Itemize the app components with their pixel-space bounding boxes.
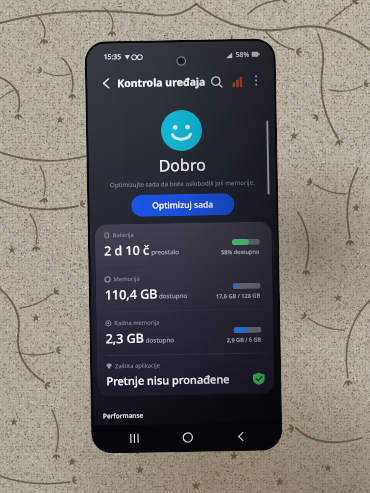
staticText: Radna memorija	[114, 318, 160, 327]
staticText: 58% dostupno	[221, 248, 260, 256]
staticText: Performanse	[103, 411, 144, 420]
button[interactable]: Radna memorija	[96, 309, 274, 355]
button[interactable]: More options	[248, 73, 264, 89]
button[interactable]: Memorija	[95, 265, 273, 312]
button[interactable]: Usage statistics	[228, 72, 246, 90]
staticText: Optimizuj sada	[152, 198, 213, 212]
staticText: Optimizujte sada da biste oslobodili još…	[110, 178, 255, 188]
button[interactable]: Optimizuj sada	[131, 193, 234, 217]
button[interactable]: Recents	[122, 426, 146, 450]
staticText: 15:35	[104, 52, 122, 61]
button[interactable]: Back	[96, 74, 114, 92]
staticText: 58%	[236, 50, 250, 59]
staticText: 2,3 GB	[105, 330, 145, 347]
staticText: preostalo	[151, 247, 179, 257]
staticText: Baterija	[113, 231, 135, 239]
staticText: dostupno	[159, 291, 188, 300]
staticText: dostupno	[146, 335, 175, 345]
button[interactable]: Zaštita aplikacije	[97, 353, 275, 396]
button[interactable]: Home	[175, 425, 199, 449]
staticText: Dobro	[158, 154, 207, 176]
staticText: Zaštita aplikacije	[115, 361, 160, 370]
staticText: Pretnje nisu pronađene	[106, 371, 230, 388]
staticText: 2,9 GB / 6 GB	[227, 336, 262, 344]
staticText: Memorija	[113, 275, 141, 283]
button[interactable]: Search	[207, 72, 225, 90]
staticText: 2 d 10 č	[104, 242, 150, 259]
staticText: 17,6 GB / 128 GB	[216, 292, 261, 300]
button[interactable]: Back	[227, 424, 251, 448]
staticText: 110,4 GB	[105, 285, 158, 303]
button[interactable]: Baterija	[95, 221, 272, 268]
staticText: Kontrola uređaja	[117, 75, 206, 90]
